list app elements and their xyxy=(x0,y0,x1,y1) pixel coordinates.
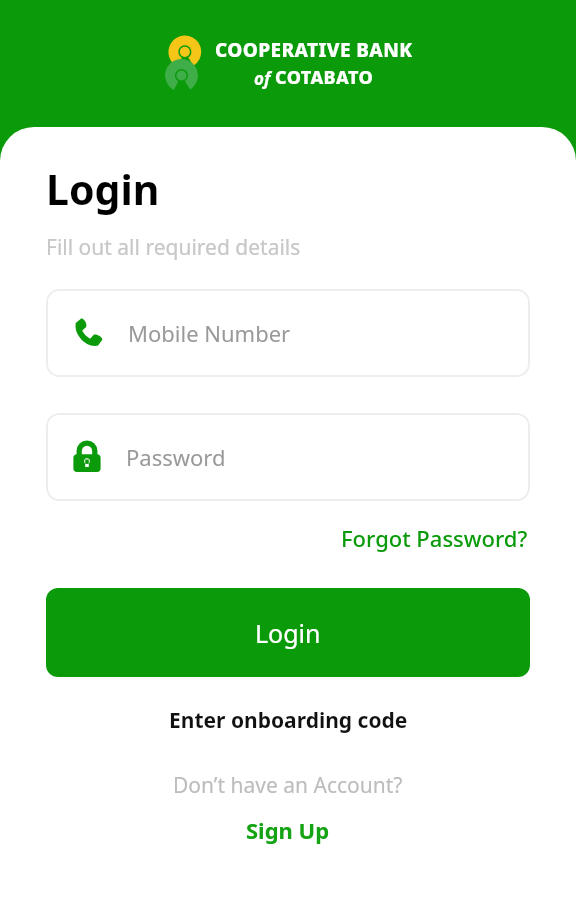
staticText: Password xyxy=(126,442,226,472)
button[interactable]: Login xyxy=(46,588,530,677)
button[interactable]: Forgot Password? xyxy=(339,519,530,557)
button[interactable]: Sign Up xyxy=(238,812,338,848)
staticText: Mobile Number xyxy=(128,318,291,348)
staticText: COTABATO xyxy=(275,65,374,90)
staticText: Sign Up xyxy=(246,815,330,845)
staticText: Forgot Password? xyxy=(341,523,528,553)
button[interactable]: Password xyxy=(46,413,530,501)
staticText: of xyxy=(254,67,275,90)
staticText: Enter onboarding code xyxy=(169,706,408,735)
staticText: COOPERATIVE BANK xyxy=(215,37,413,63)
button[interactable]: Enter onboarding code xyxy=(163,700,414,741)
staticText: Fill out all required details xyxy=(46,233,301,262)
staticText: Don’t have an Account? xyxy=(173,771,403,800)
staticText: Login xyxy=(255,616,321,650)
staticText: Login xyxy=(46,161,160,217)
button[interactable]: Mobile Number xyxy=(46,289,530,377)
